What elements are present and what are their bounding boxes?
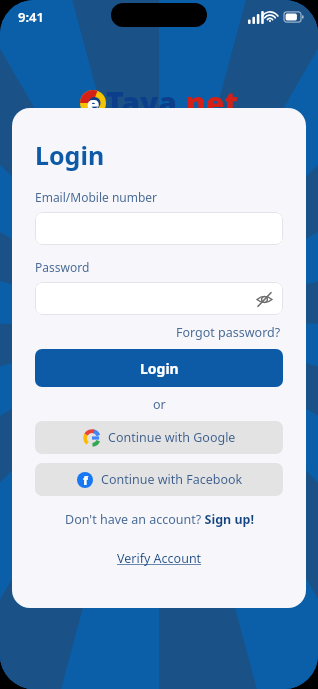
button[interactable]: Continue with Google xyxy=(35,421,283,454)
button[interactable]: f xyxy=(35,463,283,496)
staticText: Password xyxy=(35,259,90,275)
staticText: Taya.net xyxy=(106,82,239,123)
button[interactable]: Show password xyxy=(254,289,274,309)
staticText: Forgot password? xyxy=(176,324,281,341)
staticText: e xyxy=(87,90,100,116)
staticText: Login xyxy=(140,359,179,378)
staticText: Verify Account xyxy=(117,550,202,567)
button[interactable]: Show password xyxy=(35,282,283,315)
button[interactable]: Forgot password? xyxy=(174,322,283,343)
button[interactable] xyxy=(35,212,283,245)
staticText: Continue with Facebook xyxy=(101,471,243,488)
button[interactable]: Don't have an account? Sign up! xyxy=(63,509,256,530)
staticText: Email/Mobile number xyxy=(35,189,158,205)
staticText: or xyxy=(153,396,166,413)
staticText: Don't have an account? Sign up! xyxy=(65,511,254,528)
staticText: Continue with Google xyxy=(108,429,236,446)
staticText: 9:41 xyxy=(18,8,44,26)
staticText: f xyxy=(83,472,88,488)
button[interactable]: Verify Account xyxy=(115,548,204,569)
button[interactable]: Login xyxy=(35,349,283,387)
staticText: Login xyxy=(35,138,105,172)
